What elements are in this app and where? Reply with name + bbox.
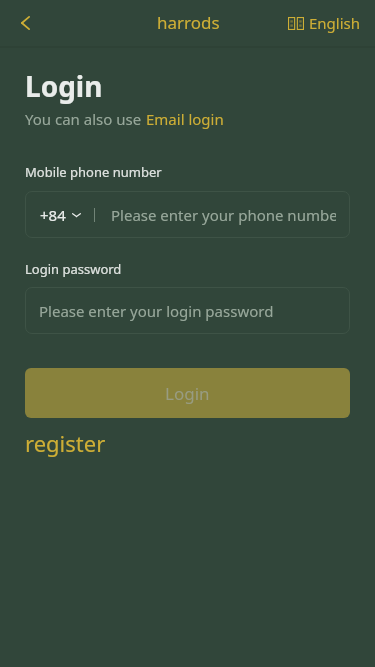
staticText: Please enter your phone number — [111, 205, 336, 225]
staticText: +84 — [40, 205, 66, 225]
staticText: Login password — [25, 260, 122, 278]
button[interactable]: register — [25, 428, 106, 458]
button[interactable]: +84 — [25, 191, 350, 238]
button[interactable]: Back — [7, 5, 43, 41]
staticText: Please enter your login password — [39, 301, 274, 321]
button[interactable]: English — [288, 13, 361, 33]
staticText: Login — [165, 382, 210, 405]
staticText: Login — [25, 67, 103, 105]
staticText: You can also use — [25, 109, 146, 129]
button[interactable]: Login — [25, 368, 350, 418]
staticText: harrods — [157, 11, 220, 34]
staticText: English — [309, 13, 361, 33]
staticText: Mobile phone number — [25, 163, 162, 181]
button[interactable]: Email login — [146, 109, 224, 129]
button[interactable]: +84 — [25, 205, 81, 225]
